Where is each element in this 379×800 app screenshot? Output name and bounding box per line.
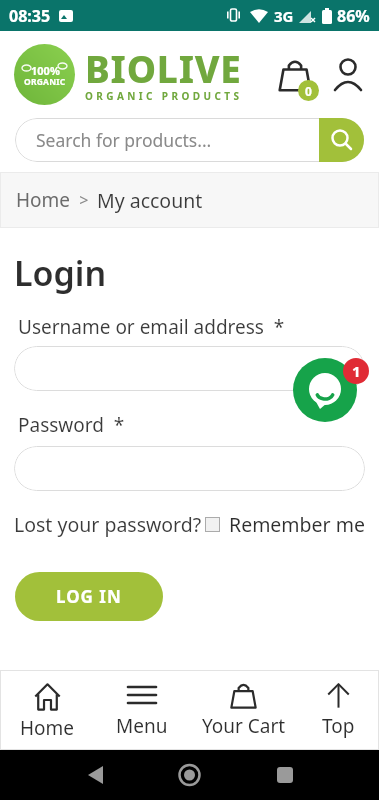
staticText: Menu: [116, 713, 168, 739]
staticText: 08:35: [9, 5, 51, 27]
button[interactable]: Lost your password?: [14, 511, 202, 538]
staticText: Login: [14, 250, 107, 296]
button[interactable]: Search for products...: [15, 118, 364, 162]
staticText: ORGANIC: [24, 76, 66, 88]
staticText: 86%: [337, 5, 370, 27]
button[interactable]: [127, 750, 253, 800]
staticText: My account: [97, 187, 203, 214]
staticText: BIOLIVE: [85, 43, 242, 93]
staticText: 1: [352, 361, 361, 381]
button[interactable]: 0: [273, 53, 317, 97]
button[interactable]: Home: [16, 187, 71, 213]
staticText: Remember me: [229, 511, 365, 538]
staticText: 100%: [31, 63, 60, 78]
staticText: 0: [305, 83, 312, 99]
staticText: >: [71, 189, 97, 211]
staticText: Username or email address *: [18, 314, 285, 340]
button[interactable]: [14, 446, 365, 491]
staticText: 3G: [274, 6, 294, 26]
staticText: ORGANIC PRODUCTS: [85, 89, 243, 103]
button[interactable]: Your Cart: [189, 670, 298, 750]
staticText: Your Cart: [202, 713, 286, 739]
staticText: LOG IN: [56, 585, 122, 608]
button[interactable]: BIOLIVE: [85, 43, 243, 107]
button[interactable]: Home: [0, 670, 94, 750]
staticText: Top: [322, 713, 355, 739]
button[interactable]: LOG IN: [15, 572, 163, 621]
staticText: Password *: [18, 412, 125, 438]
button[interactable]: Menu: [94, 670, 189, 750]
button[interactable]: [293, 358, 357, 422]
staticText: Home: [20, 715, 75, 741]
button[interactable]: [0, 750, 127, 800]
button[interactable]: [331, 58, 365, 92]
button[interactable]: [14, 346, 365, 391]
button[interactable]: Remember me: [205, 511, 365, 538]
button[interactable]: Top: [298, 670, 379, 750]
staticText: Search for products...: [36, 128, 212, 152]
button[interactable]: [319, 118, 364, 162]
button[interactable]: [253, 750, 379, 800]
